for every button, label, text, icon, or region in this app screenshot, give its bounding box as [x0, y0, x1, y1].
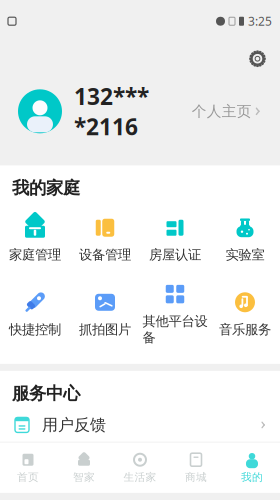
staticText: 用户反馈 — [42, 415, 106, 435]
staticText: 家庭管理 — [9, 247, 61, 263]
staticText: 设备管理 — [79, 247, 131, 263]
staticText: 3:25 — [248, 13, 272, 29]
staticText: 商城 — [185, 471, 207, 484]
button[interactable]: 房屋认证 — [140, 213, 210, 265]
staticText: 我的家庭 — [12, 177, 80, 199]
staticText: 实验室 — [225, 247, 264, 263]
button[interactable]: 家庭管理 — [0, 213, 70, 265]
button[interactable]: 快捷控制 — [0, 287, 70, 340]
staticText: 132****2116 — [74, 81, 149, 141]
staticText: 房屋认证 — [149, 247, 201, 263]
button[interactable]: 其他平台设备 — [140, 279, 210, 348]
staticText: 服务中心 — [12, 383, 80, 404]
staticText: 个人主页 — [192, 102, 252, 120]
staticText: 其他平台设备 — [142, 313, 207, 346]
button[interactable]: 商城 — [168, 448, 224, 488]
button[interactable]: 用户反馈 — [0, 404, 280, 446]
button[interactable]: 音乐服务 — [210, 287, 280, 340]
button[interactable]: 设备管理 — [70, 213, 140, 265]
button[interactable]: 我的 — [224, 448, 280, 488]
button[interactable]: 132****2116 — [0, 75, 280, 147]
button[interactable]: 首页 — [0, 448, 56, 488]
button[interactable]: 设置 — [241, 42, 274, 75]
button[interactable]: 实验室 — [210, 213, 280, 265]
staticText: 音乐服务 — [219, 321, 271, 338]
staticText: 我的 — [241, 471, 263, 484]
button[interactable]: 抓拍图片 — [70, 287, 140, 340]
staticText: 抓拍图片 — [79, 321, 131, 338]
button[interactable]: 智家 — [56, 448, 112, 488]
button[interactable]: 生活家 — [112, 448, 168, 488]
staticText: 快捷控制 — [9, 321, 61, 338]
staticText: 智家 — [73, 471, 95, 484]
staticText: 首页 — [17, 471, 39, 484]
staticText: 生活家 — [123, 471, 156, 484]
